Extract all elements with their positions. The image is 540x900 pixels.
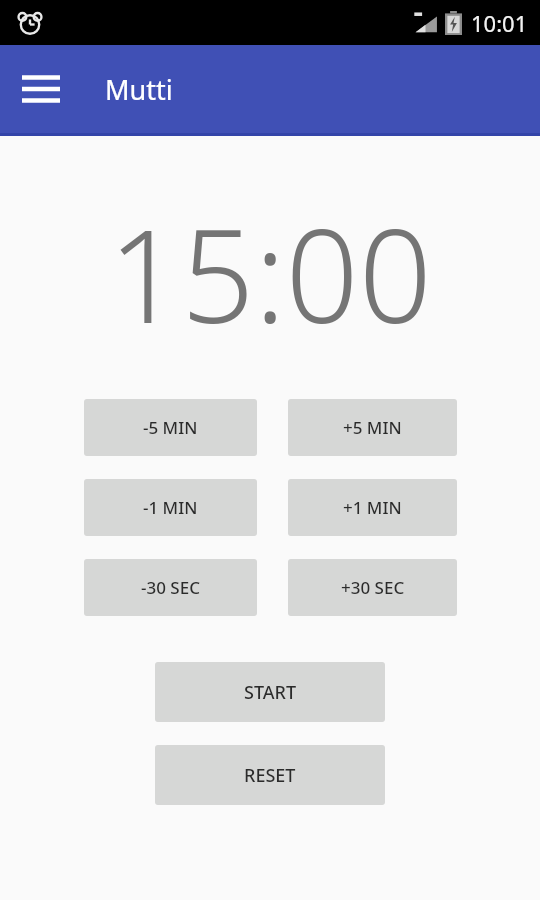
staticText: -1 MIN [143, 496, 198, 519]
staticText: RESET [244, 763, 296, 788]
staticText: Mutti [105, 71, 173, 108]
staticText: +30 SEC [341, 576, 405, 599]
staticText: +1 MIN [343, 496, 402, 519]
button[interactable]: -1 MIN [84, 479, 257, 536]
button[interactable]: Open navigation drawer [17, 65, 65, 113]
button[interactable]: +30 SEC [288, 559, 457, 616]
button[interactable]: +1 MIN [288, 479, 457, 536]
button[interactable]: RESET [155, 745, 385, 805]
button[interactable]: -5 MIN [84, 399, 257, 456]
staticText: START [244, 680, 297, 705]
button[interactable]: -30 SEC [84, 559, 257, 616]
staticText: 10:01 [471, 8, 528, 38]
staticText: -30 SEC [141, 576, 200, 599]
staticText: 15:00 [108, 186, 432, 360]
button[interactable]: +5 MIN [288, 399, 457, 456]
button[interactable]: START [155, 662, 385, 722]
staticText: -5 MIN [143, 416, 198, 439]
staticText: +5 MIN [343, 416, 402, 439]
